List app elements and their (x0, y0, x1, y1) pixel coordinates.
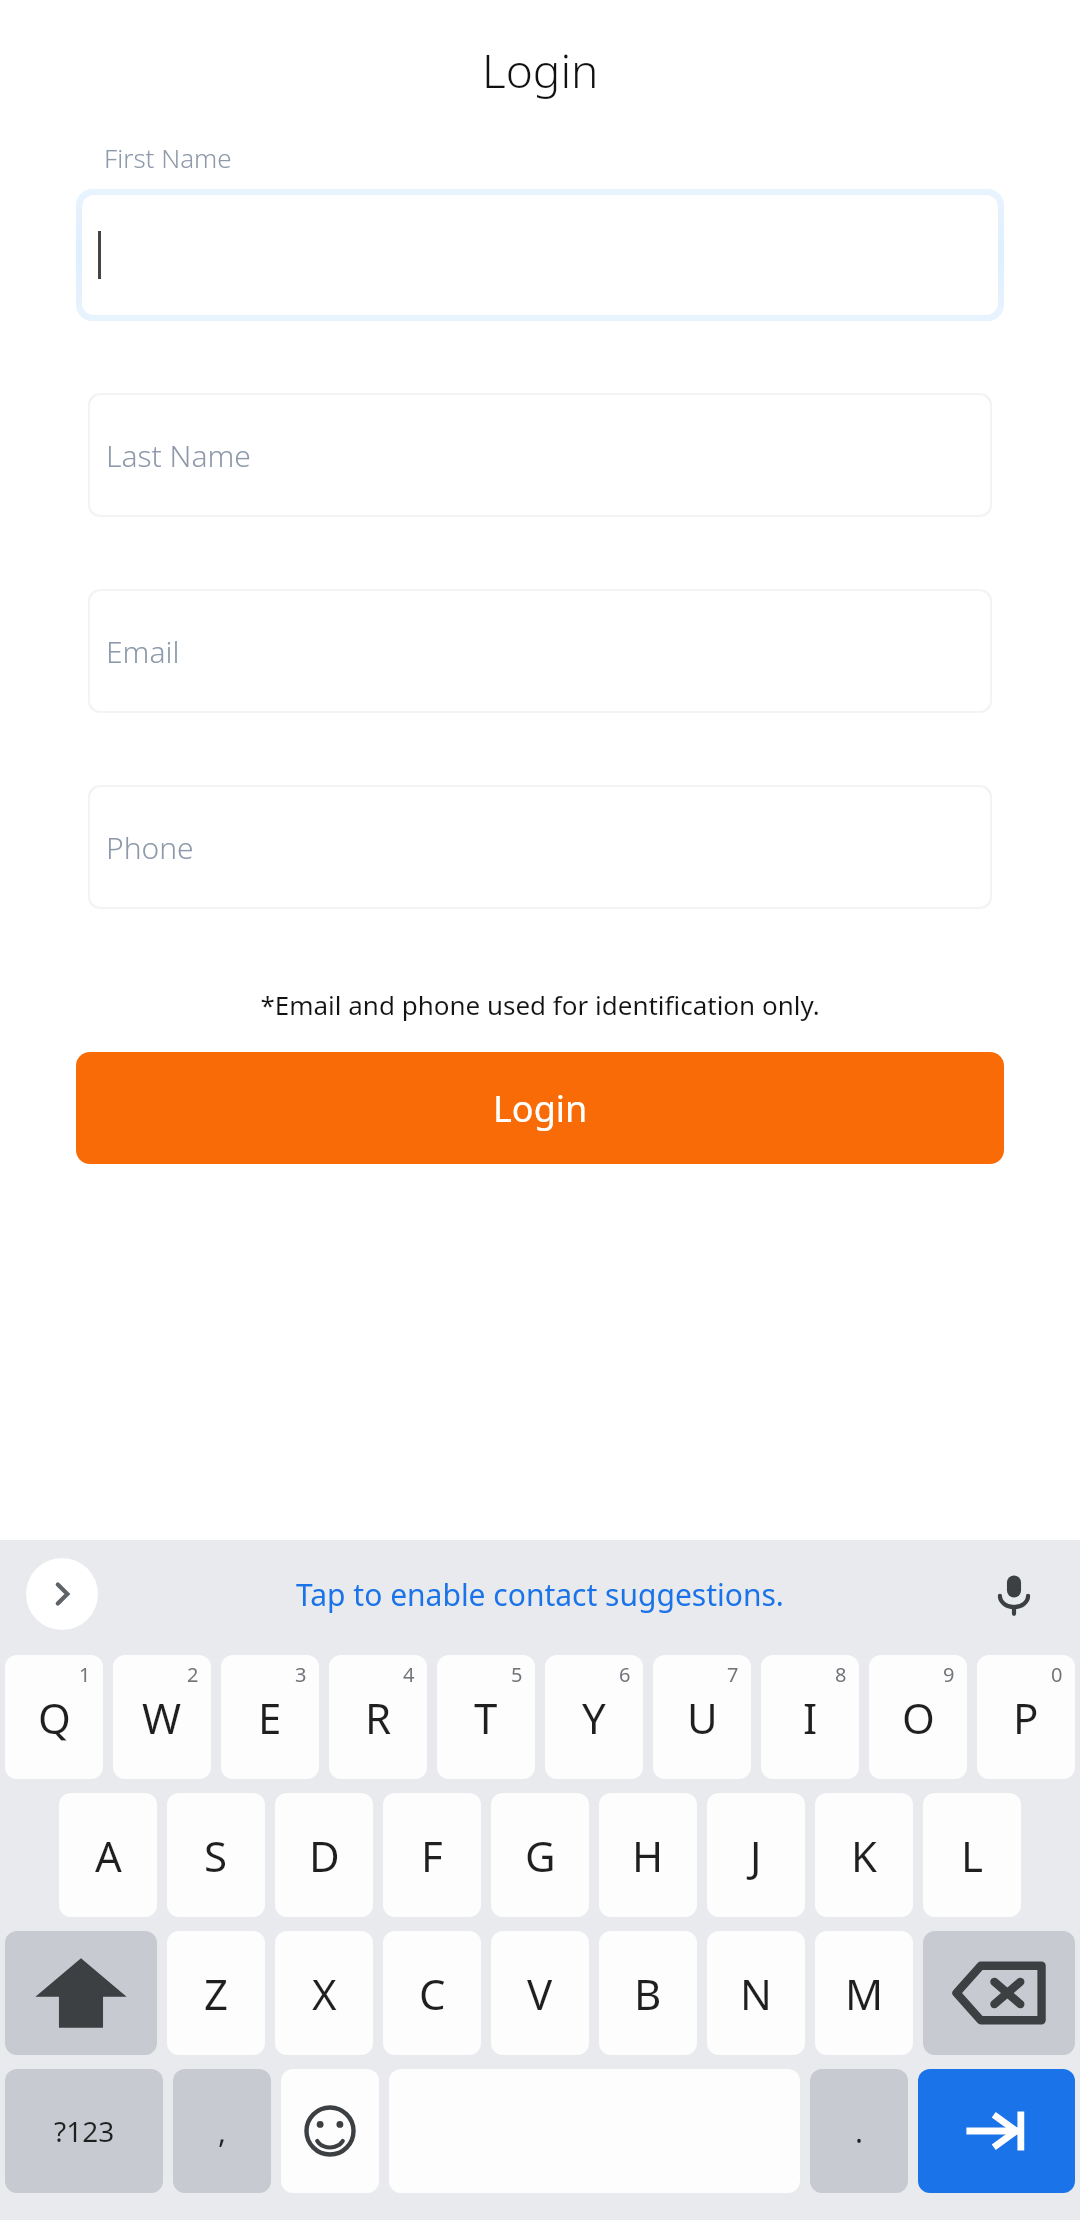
staticText: R (365, 1689, 392, 1746)
staticText: 6 (619, 1661, 631, 1688)
button[interactable]: Voice input (984, 1564, 1044, 1624)
button[interactable]: E (221, 1655, 319, 1779)
button[interactable]: J (707, 1793, 805, 1917)
staticText: H (632, 1827, 664, 1884)
staticText: Email (106, 631, 180, 672)
staticText: Q (38, 1689, 71, 1746)
staticText: T (474, 1689, 498, 1746)
button[interactable]: W (113, 1655, 211, 1779)
staticText: S (204, 1827, 228, 1884)
button[interactable]: S (167, 1793, 265, 1917)
button[interactable]: O (869, 1655, 967, 1779)
staticText: U (687, 1689, 718, 1746)
button[interactable]: . (810, 2069, 908, 2193)
staticText: X (312, 1965, 337, 2022)
staticText: Last Name (106, 435, 251, 476)
button[interactable]: N (707, 1931, 805, 2055)
staticText: D (309, 1827, 340, 1884)
staticText: B (634, 1965, 662, 2022)
staticText: , (218, 2111, 227, 2152)
staticText: V (527, 1965, 553, 2022)
staticText: J (750, 1827, 762, 1884)
button[interactable]: Z (167, 1931, 265, 2055)
button[interactable]: Login (76, 1052, 1004, 1164)
button[interactable]: F (383, 1793, 481, 1917)
staticText: First Name (104, 140, 232, 175)
staticText: Login (482, 39, 599, 102)
button[interactable]: Expand (26, 1558, 98, 1630)
staticText: F (421, 1827, 443, 1884)
button[interactable]: L (923, 1793, 1021, 1917)
button[interactable]: X (275, 1931, 373, 2055)
staticText: E (258, 1689, 282, 1746)
button[interactable]: , (173, 2069, 271, 2193)
button[interactable]: Y (545, 1655, 643, 1779)
staticText: N (740, 1965, 772, 2022)
staticText: Login (493, 1084, 588, 1133)
staticText: Y (582, 1689, 606, 1746)
staticText: K (851, 1827, 877, 1884)
staticText: W (142, 1689, 182, 1746)
button[interactable]: ?123 (5, 2069, 163, 2193)
staticText: Phone (106, 827, 194, 868)
button[interactable]: Email (90, 591, 990, 711)
button[interactable]: T (437, 1655, 535, 1779)
staticText: C (419, 1965, 446, 2022)
staticText: 8 (835, 1661, 847, 1688)
button[interactable]: R (329, 1655, 427, 1779)
staticText: A (95, 1827, 122, 1884)
staticText: O (902, 1689, 935, 1746)
button[interactable]: Enter (918, 2069, 1075, 2193)
button[interactable]: Tap to enable contact suggestions. (296, 1574, 784, 1615)
button[interactable]: Q (5, 1655, 103, 1779)
staticText: L (961, 1827, 984, 1884)
button[interactable]: G (491, 1793, 589, 1917)
button[interactable]: K (815, 1793, 913, 1917)
staticText: 5 (511, 1661, 523, 1688)
button[interactable]: Backspace (923, 1931, 1075, 2055)
button[interactable]: M (815, 1931, 913, 2055)
staticText: 0 (1051, 1661, 1063, 1688)
staticText: . (855, 2111, 864, 2152)
staticText: Z (204, 1965, 229, 2022)
button[interactable]: H (599, 1793, 697, 1917)
button[interactable] (82, 195, 998, 315)
staticText: M (845, 1965, 884, 2022)
button[interactable]: V (491, 1931, 589, 2055)
staticText: 4 (403, 1661, 415, 1688)
staticText: 7 (727, 1661, 739, 1688)
staticText: I (803, 1689, 818, 1746)
button[interactable]: B (599, 1931, 697, 2055)
staticText: 1 (79, 1661, 91, 1688)
button[interactable]: Phone (90, 787, 990, 907)
staticText: G (525, 1827, 556, 1884)
staticText: *Email and phone used for identification… (260, 987, 820, 1022)
staticText: 9 (943, 1661, 955, 1688)
button[interactable]: D (275, 1793, 373, 1917)
staticText: ?123 (54, 2112, 115, 2150)
staticText: P (1013, 1689, 1039, 1746)
staticText: 3 (295, 1661, 307, 1688)
staticText: 2 (187, 1661, 199, 1688)
button[interactable]: Shift (5, 1931, 157, 2055)
button[interactable]: I (761, 1655, 859, 1779)
button[interactable]: U (653, 1655, 751, 1779)
button[interactable]: Last Name (90, 395, 990, 515)
button[interactable]: Emoji (281, 2069, 379, 2193)
button[interactable]: A (59, 1793, 157, 1917)
button[interactable]: P (977, 1655, 1075, 1779)
button[interactable]: C (383, 1931, 481, 2055)
